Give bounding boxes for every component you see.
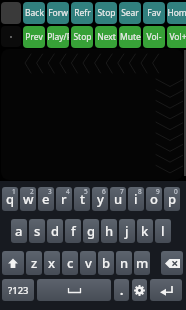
staticText: j [125,222,129,240]
button[interactable]: Vol+ [167,26,186,48]
button[interactable]: p [164,187,180,211]
button[interactable]: t [74,187,90,211]
button[interactable]: e [38,187,54,211]
button[interactable]: b [98,251,114,275]
staticText: k [141,222,149,240]
button[interactable]: Refr [71,2,93,24]
staticText: a [15,222,23,240]
button[interactable]: Backspace [161,251,183,275]
button[interactable]: Forw [47,2,69,24]
staticText: Mute [120,31,141,43]
staticText: c [67,254,74,272]
staticText: Prev [25,31,43,43]
staticText: f [71,222,76,240]
button[interactable]: Fav [143,2,165,24]
button[interactable]: Home [167,2,186,24]
button[interactable]: Next [95,26,117,48]
button[interactable]: m [134,251,150,275]
button[interactable]: l [155,219,171,243]
button[interactable]: Prev [23,26,45,48]
staticText: 1 [12,187,16,196]
button[interactable]: i [128,187,144,211]
button[interactable]: Play/Pause [47,26,69,48]
staticText: y [97,190,104,208]
staticText: 8 [138,187,142,196]
button[interactable]: . [114,279,129,301]
staticText: 3 [48,187,52,196]
button[interactable]: ?123 [2,279,34,301]
button[interactable]: Stop [71,26,93,48]
staticText: Next [97,31,116,43]
staticText: Vol+ [169,31,186,43]
button[interactable]: o [146,187,162,211]
staticText: 6 [102,187,106,196]
staticText: 4 [66,187,70,196]
button[interactable]: j [119,219,135,243]
button[interactable]: x [44,251,60,275]
staticText: Stop [73,31,92,43]
staticText: i [134,190,138,208]
staticText: Vol- [146,31,162,43]
staticText: m [136,254,149,272]
button[interactable]: s [29,219,45,243]
staticText: w [23,190,34,208]
staticText: 0 [174,187,178,196]
button[interactable]: d [47,219,63,243]
staticText: Back [25,7,44,19]
staticText: Play/Pause [47,31,69,43]
staticText: e [42,190,50,208]
staticText: Refr [74,7,91,19]
button[interactable]: g [83,219,99,243]
staticText: Home [167,7,186,19]
button[interactable]: v [80,251,96,275]
button[interactable]: Back [23,2,45,24]
staticText: u [114,190,123,208]
staticText: s [34,222,41,240]
button[interactable]: Sear [119,2,141,24]
staticText: Sear [121,7,139,19]
staticText: o [150,190,158,208]
button[interactable]: Stop [95,2,117,24]
button[interactable]: y [92,187,108,211]
staticText: . [120,282,124,298]
staticText: g [87,222,96,240]
button[interactable]: z [26,251,42,275]
staticText: Forw [48,7,68,19]
staticText: r [61,190,67,208]
button[interactable]: u [110,187,126,211]
staticText: 5 [84,187,88,196]
staticText: 7 [120,187,124,196]
button[interactable]: Keyboard toggle [1,2,21,24]
staticText: b [102,254,111,272]
button[interactable]: c [62,251,78,275]
button[interactable]: r [56,187,72,211]
staticText: h [105,222,114,240]
staticText: d [51,222,60,240]
button[interactable]: Space [37,279,111,301]
button[interactable]: k [137,219,153,243]
button[interactable]: h [101,219,117,243]
staticText: z [31,254,38,272]
staticText: q [6,190,15,208]
staticText: x [48,254,56,272]
staticText: l [161,222,165,240]
button[interactable]: a [11,219,27,243]
staticText: Stop [97,7,116,19]
staticText: n [120,254,129,272]
button[interactable]: w [20,187,36,211]
staticText: 2 [30,187,34,196]
button[interactable]: Mute [119,26,141,48]
button[interactable]: Media toggle [1,26,21,47]
button[interactable]: Enter [150,279,182,301]
button[interactable]: Vol- [143,26,165,48]
staticText: 9 [156,187,160,196]
staticText: Fav [147,7,161,19]
button[interactable]: Shift [2,251,24,275]
button[interactable]: f [65,219,81,243]
button[interactable]: q [2,187,18,211]
button[interactable]: Settings [132,279,147,301]
button[interactable]: n [116,251,132,275]
staticText: t [80,190,85,208]
staticText: ?123 [8,284,29,297]
